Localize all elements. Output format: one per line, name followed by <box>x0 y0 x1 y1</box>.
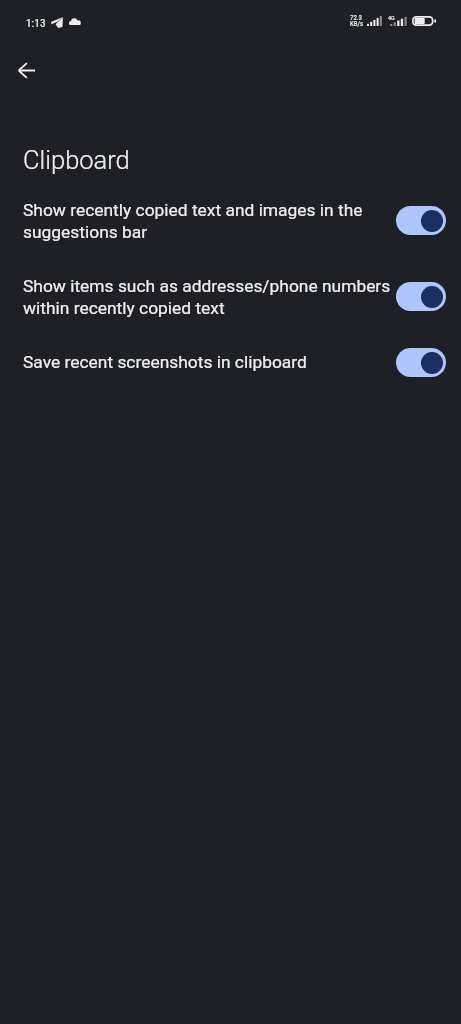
button[interactable]: Show recently copied text and images in … <box>0 192 461 249</box>
button[interactable]: Toggle setting <box>396 206 446 235</box>
button[interactable]: Toggle setting <box>396 348 446 377</box>
button[interactable]: Back <box>4 48 48 92</box>
staticText: Clipboard <box>23 145 130 175</box>
staticText: 1:13 <box>26 16 46 29</box>
staticText: Show recently copied text and images in … <box>23 200 393 242</box>
button[interactable]: Toggle setting <box>396 282 446 311</box>
button[interactable]: Show items such as addresses/phone numbe… <box>0 268 461 325</box>
staticText: Show items such as addresses/phone numbe… <box>23 276 393 318</box>
staticText: Save recent screenshots in clipboard <box>23 352 393 372</box>
staticText: 4G <box>388 14 395 21</box>
staticText: KB/s <box>350 20 364 28</box>
button[interactable]: Save recent screenshots in clipboard <box>0 344 461 380</box>
staticText: 72.3 <box>350 14 363 22</box>
